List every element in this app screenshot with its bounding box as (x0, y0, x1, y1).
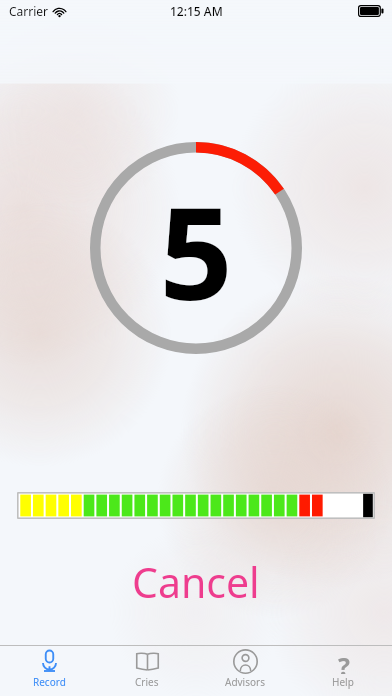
button[interactable]: Cancel (108, 550, 284, 614)
staticText: Cancel (132, 554, 260, 610)
staticText: 5 (159, 163, 233, 337)
staticText: Help (332, 675, 354, 689)
button[interactable]: Record (0, 648, 98, 696)
staticText: Advisors (225, 675, 265, 689)
staticText: Record (33, 675, 66, 689)
button[interactable]: Help (294, 648, 392, 696)
staticText: Cries (135, 675, 159, 689)
staticText: ? (338, 649, 350, 674)
staticText: Carrier (9, 3, 49, 19)
button[interactable]: Advisors (196, 648, 294, 696)
button[interactable]: Cries (98, 648, 196, 696)
staticText: 12:15 AM (170, 3, 223, 19)
